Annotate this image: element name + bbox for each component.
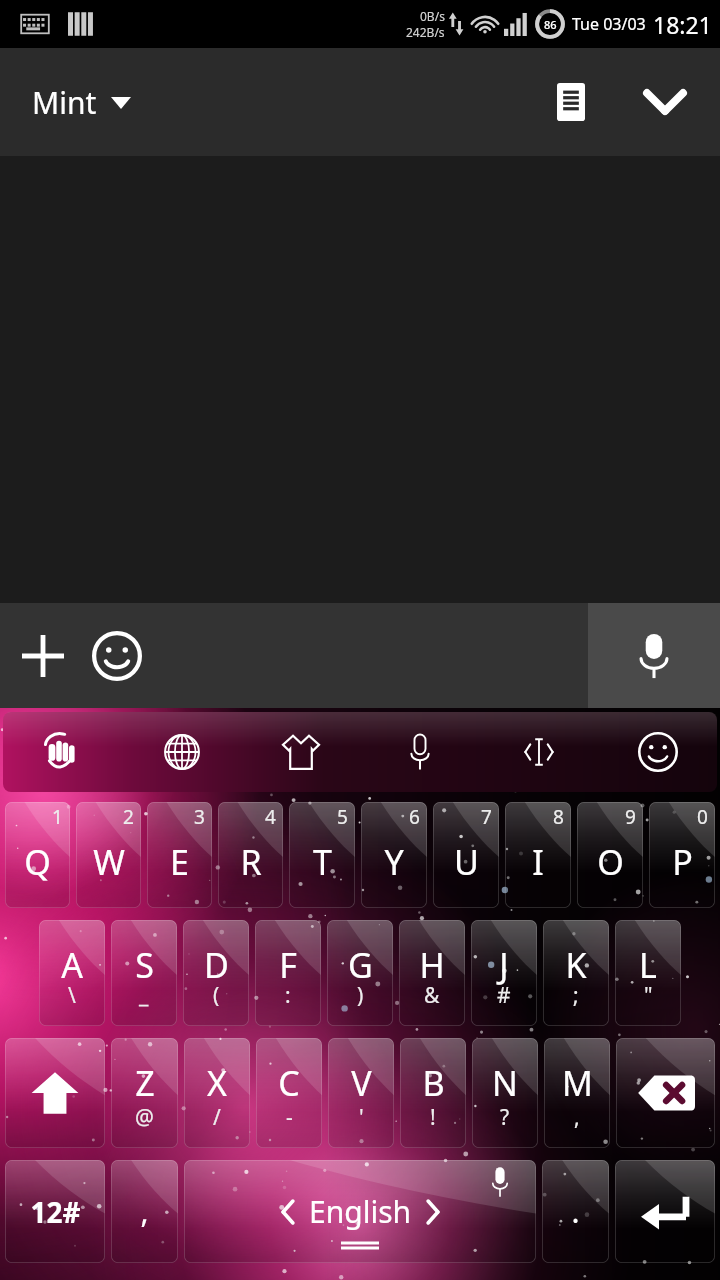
button[interactable]: M — [544, 1038, 610, 1148]
button[interactable]: S — [111, 920, 177, 1026]
staticText: English — [309, 1191, 412, 1232]
staticText: O — [597, 839, 624, 885]
staticText: @ — [135, 1103, 154, 1132]
staticText: G — [348, 942, 373, 988]
button[interactable]: B — [400, 1038, 466, 1148]
staticText: " — [644, 981, 653, 1010]
staticText: W — [93, 839, 125, 885]
button[interactable]: 8 — [505, 802, 571, 908]
staticText: C — [278, 1060, 300, 1106]
staticText: 4 — [265, 804, 276, 830]
button[interactable]: A — [39, 920, 105, 1026]
button[interactable]: Z — [111, 1038, 178, 1148]
staticText: - — [286, 1103, 293, 1132]
button[interactable]: Enter — [615, 1160, 715, 1263]
staticText: # — [497, 981, 511, 1010]
staticText: E — [170, 839, 189, 885]
button[interactable]: 6 — [361, 802, 427, 908]
staticText: Q — [24, 839, 51, 885]
button[interactable]: C — [256, 1038, 322, 1148]
button[interactable]: Voice input — [588, 603, 720, 708]
staticText: 0 — [697, 804, 708, 830]
staticText: U — [454, 839, 479, 885]
staticText: Y — [384, 839, 404, 885]
staticText: T — [313, 839, 332, 885]
staticText: ' — [359, 1103, 364, 1132]
button[interactable]: V — [328, 1038, 394, 1148]
staticText: Mint — [32, 82, 97, 123]
button[interactable]: H — [399, 920, 465, 1026]
staticText: , — [574, 1103, 580, 1132]
staticText: V — [351, 1060, 372, 1106]
staticText: S — [135, 942, 154, 988]
button[interactable]: Emoji — [598, 712, 717, 792]
button[interactable]: Shift — [5, 1038, 105, 1148]
button[interactable]: Voice — [360, 712, 479, 792]
button[interactable]: Language — [122, 712, 241, 792]
button[interactable]: 0 — [649, 802, 715, 908]
staticText: ) — [357, 981, 364, 1010]
staticText: 3 — [194, 804, 205, 830]
staticText: Z — [135, 1060, 155, 1106]
staticText: I — [532, 839, 544, 885]
button[interactable]: G — [327, 920, 393, 1026]
button[interactable]: D — [183, 920, 249, 1026]
staticText: 86 — [544, 17, 557, 32]
staticText: A — [61, 942, 83, 988]
staticText: 242B/s — [406, 24, 445, 40]
staticText: X — [207, 1060, 227, 1106]
staticText: , — [140, 1191, 149, 1232]
button[interactable]: Notes list — [538, 69, 604, 135]
staticText: N — [492, 1060, 518, 1106]
button[interactable]: 12# — [5, 1160, 105, 1263]
staticText: : — [285, 981, 291, 1010]
staticText: 5 — [337, 804, 348, 830]
staticText: ; — [573, 981, 579, 1010]
staticText: K — [565, 942, 587, 988]
staticText: ( — [213, 981, 220, 1010]
staticText: & — [424, 981, 440, 1010]
button[interactable]: . — [542, 1160, 609, 1263]
button[interactable]: 3 — [147, 802, 212, 908]
button[interactable]: 1 — [5, 802, 70, 908]
staticText: D — [204, 942, 229, 988]
staticText: \ — [68, 981, 76, 1010]
button[interactable]: 7 — [433, 802, 499, 908]
button[interactable]: Emoji — [86, 625, 148, 687]
staticText: 7 — [481, 804, 492, 830]
button[interactable]: Gesture typing — [3, 712, 122, 792]
button[interactable]: 5 — [289, 802, 355, 908]
staticText: / — [213, 1103, 221, 1132]
button[interactable]: Add — [12, 625, 74, 687]
button[interactable]: Mint — [20, 74, 143, 131]
button[interactable]: 2 — [76, 802, 141, 908]
staticText: 9 — [625, 804, 636, 830]
staticText: B — [422, 1060, 445, 1106]
button[interactable]: , — [111, 1160, 178, 1263]
staticText: _ — [139, 981, 149, 1010]
button[interactable]: 9 — [577, 802, 643, 908]
staticText: R — [240, 839, 262, 885]
button[interactable]: Theme — [241, 712, 360, 792]
staticText: 12# — [30, 1193, 81, 1231]
staticText: 2 — [123, 804, 134, 830]
staticText: H — [419, 942, 445, 988]
button[interactable]: K — [543, 920, 609, 1026]
button[interactable]: Collapse — [632, 69, 698, 135]
button[interactable]: 4 — [218, 802, 283, 908]
button[interactable]: Space — [184, 1160, 536, 1263]
staticText: . — [571, 1191, 580, 1232]
staticText: L — [639, 942, 657, 988]
staticText: P — [672, 839, 693, 885]
staticText: F — [279, 942, 297, 988]
button[interactable]: L — [615, 920, 681, 1026]
button[interactable]: J — [471, 920, 537, 1026]
button[interactable]: N — [472, 1038, 538, 1148]
button[interactable]: Backspace — [616, 1038, 715, 1148]
button[interactable]: F — [255, 920, 321, 1026]
staticText: 8 — [553, 804, 564, 830]
staticText: 18:21 — [653, 9, 712, 40]
staticText: Tue 03/03 — [572, 13, 646, 35]
button[interactable]: X — [184, 1038, 250, 1148]
button[interactable]: Cursor — [479, 712, 598, 792]
